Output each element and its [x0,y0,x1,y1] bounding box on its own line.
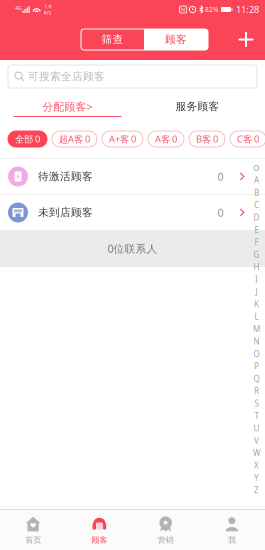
button[interactable]: U [251,422,262,434]
staticText: 4G [15,4,22,12]
button[interactable]: I [251,273,262,286]
staticText: 顾客 [165,33,187,46]
button[interactable]: F [251,236,262,248]
staticText: G [253,249,259,260]
staticText: A [254,175,259,185]
button[interactable]: 超A客 0 [52,131,97,147]
button[interactable]: 服务顾客 [132,97,262,117]
button[interactable]: 筛查 [81,29,144,50]
button[interactable]: W [251,447,262,459]
staticText: D [253,212,259,223]
staticText: 我 [228,535,236,545]
staticText: K [254,299,259,309]
staticText: 82% [205,5,219,14]
staticText: I [255,274,258,285]
button[interactable]: H [251,261,262,273]
button[interactable]: B客 0 [189,131,225,147]
staticText: L [254,311,258,322]
staticText: 11:28 [236,3,259,16]
button[interactable]: Y [251,472,262,484]
staticText: E [254,224,258,235]
staticText: 可搜索全店顾客 [28,70,105,83]
staticText: 1.4 [44,3,51,10]
button[interactable]: D [251,211,262,224]
staticText: 营销 [158,535,174,545]
staticText: A客 0 [155,133,177,145]
staticText: 分配顾客> [42,99,92,114]
staticText: 服务顾客 [175,100,219,113]
button[interactable]: L [251,310,262,323]
staticText: P [254,361,259,371]
staticText: O [253,348,259,359]
staticText: 超A客 0 [59,133,90,145]
staticText: X [254,460,259,471]
button[interactable]: P [251,360,262,372]
button[interactable]: Q [251,372,262,385]
button[interactable]: E [251,224,262,236]
staticText: H [253,262,259,272]
button[interactable]: G [251,248,262,261]
button[interactable]: C [251,199,262,211]
button[interactable]: N [251,335,262,348]
button[interactable]: B [251,186,262,199]
button[interactable]: 全部 0 [8,131,47,147]
staticText: U [253,423,259,433]
button[interactable]: 可搜索全店顾客 [8,65,257,88]
button[interactable]: 分配顾客> [2,97,132,117]
button[interactable]: 顾客 [144,29,208,50]
staticText: C [254,200,259,210]
staticText: 0位联系人 [107,241,157,256]
staticText: C客 0 [237,133,259,145]
button[interactable]: C客 0 [230,131,265,147]
staticText: M [253,324,260,334]
staticText: B [254,187,259,198]
staticText: K/s [44,9,52,16]
button[interactable]: A+客 0 [102,131,143,147]
button[interactable]: X [251,459,262,472]
staticText: J [255,286,257,297]
staticText: 筛查 [101,33,123,46]
staticText: N [181,6,185,13]
button[interactable]: R [251,385,262,397]
staticText: Q [253,373,259,384]
staticText: 0 [217,169,223,184]
button[interactable]: 未到店顾客 [0,195,265,230]
staticText: 未到店顾客 [38,206,93,219]
staticText: V [254,435,259,446]
staticText: 待激活顾客 [38,170,93,183]
staticText: T [254,410,258,421]
staticText: W [253,448,260,458]
staticText: 全部 0 [15,133,40,145]
staticText: R [254,386,259,396]
staticText: Z [254,485,259,495]
button[interactable]: 营销 [132,510,199,550]
staticText: A+客 0 [109,133,136,145]
button[interactable]: 顾客 [66,510,132,550]
staticText: 顾客 [91,535,107,545]
button[interactable]: A客 0 [148,131,184,147]
button[interactable]: 我 [199,510,265,550]
staticText: 首页 [25,535,41,545]
button[interactable]: M [251,323,262,335]
staticText: S [254,398,258,409]
button[interactable]: A [251,174,262,186]
staticText: Y [254,472,259,483]
button[interactable]: S [251,397,262,410]
staticText: B客 0 [196,133,218,145]
button[interactable]: V [251,434,262,447]
button[interactable]: Search index [251,162,262,174]
button[interactable]: 首页 [0,510,66,550]
button[interactable]: 待激活顾客 [0,159,265,194]
button[interactable]: O [251,348,262,360]
staticText: 0 [217,205,223,220]
staticText: F [254,237,258,247]
button[interactable]: Add customer [231,24,261,54]
button[interactable]: K [251,298,262,310]
button[interactable]: J [251,286,262,298]
button[interactable]: Z [251,484,262,496]
button[interactable]: T [251,410,262,422]
staticText: N [253,336,259,347]
